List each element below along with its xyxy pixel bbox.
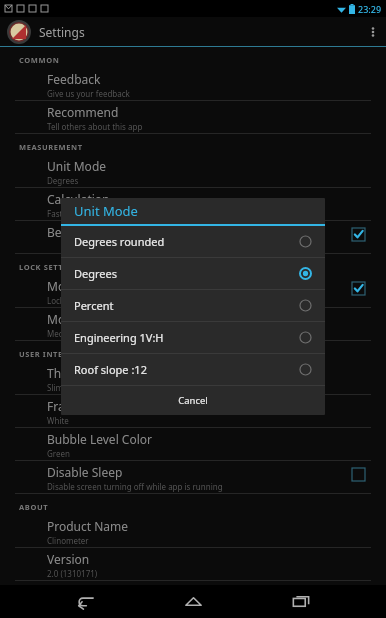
staticText: Degrees [74, 266, 299, 281]
staticText: White [47, 415, 69, 426]
staticText: Percent [74, 298, 299, 313]
staticText: Calculation [47, 191, 110, 207]
staticText: USER INTERFACE [19, 349, 89, 359]
button[interactable]: Frame Color [0, 395, 386, 428]
staticText: Slim [47, 382, 63, 393]
staticText: Unit Mode [74, 202, 138, 220]
button[interactable]: Version [0, 548, 386, 581]
staticText: Engineering 1V:H [74, 330, 299, 345]
staticText: Recommend [47, 104, 119, 120]
button[interactable]: Disable Sleep [0, 461, 386, 494]
staticText: Beep [47, 224, 76, 240]
staticText: Product Name [47, 518, 129, 534]
button[interactable]: Engineering 1V:H [61, 322, 325, 354]
staticText: Lock [47, 295, 65, 306]
button[interactable]: Unit Mode [0, 155, 386, 188]
staticText: Clinometer [47, 535, 89, 546]
staticText: Tell others about this app [47, 121, 143, 132]
staticText: 23:29 [358, 3, 382, 15]
staticText: Cancel [178, 394, 208, 407]
staticText: Unit Mode [47, 158, 107, 174]
button[interactable]: More options [360, 17, 386, 47]
button[interactable]: Motion Lock [0, 275, 386, 308]
button[interactable]: Motion [0, 308, 386, 341]
staticText: COMMON [19, 55, 60, 65]
staticText: Medium [47, 328, 79, 339]
staticText: Bubble Level Color [47, 431, 153, 447]
staticText: Degrees rounded [74, 234, 299, 249]
button[interactable]: Feedback [0, 68, 386, 101]
button[interactable]: Recommend [0, 101, 386, 134]
staticText: LOCK SETTINGS [19, 262, 85, 272]
button[interactable]: Recents [278, 585, 324, 618]
button[interactable]: Bubble Level Color [0, 428, 386, 461]
staticText: Theme [47, 365, 86, 381]
staticText: Fast [47, 208, 63, 219]
button[interactable]: Theme [0, 362, 386, 395]
staticText: Feedback [47, 71, 101, 87]
staticText: Disable Sleep [47, 464, 123, 480]
staticText: 2.0 (1310171) [47, 568, 98, 579]
button[interactable]: Calculation [0, 188, 386, 221]
button[interactable]: Degrees rounded [61, 226, 325, 258]
button[interactable]: Home [170, 585, 216, 618]
button[interactable]: Back [62, 585, 108, 618]
staticText: MEASUREMENT [19, 142, 83, 152]
button[interactable]: Roof slope :12 [61, 354, 325, 386]
staticText: ABOUT [19, 502, 49, 512]
staticText: Give us your feedback [47, 88, 130, 99]
button[interactable]: Product Name [0, 515, 386, 548]
button[interactable]: Degrees [61, 258, 325, 290]
staticText: Settings [39, 24, 85, 40]
staticText: Motion [47, 311, 88, 327]
staticText: Version [47, 551, 90, 567]
staticText: Frame Color [47, 398, 116, 414]
staticText: Disable screen turning off while app is … [47, 481, 223, 492]
staticText: Roof slope :12 [74, 362, 299, 377]
button[interactable]: Cancel [61, 386, 325, 415]
staticText: Degrees [47, 175, 79, 186]
staticText: Green [47, 448, 70, 459]
button[interactable]: Percent [61, 290, 325, 322]
button[interactable]: Beep [0, 221, 386, 254]
button[interactable]: Up [8, 21, 30, 43]
staticText: Motion Lock [47, 278, 117, 294]
